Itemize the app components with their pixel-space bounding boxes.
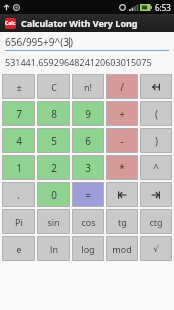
button[interactable]: ± — [2, 74, 35, 99]
button[interactable]: * — [106, 155, 138, 180]
button[interactable]: . — [2, 182, 35, 207]
staticText: mod — [112, 243, 132, 255]
button[interactable]: ) — [140, 128, 172, 153]
staticText: + — [119, 107, 125, 121]
button[interactable]: ctg — [140, 209, 172, 234]
staticText: = — [85, 188, 91, 202]
button[interactable]: 6 — [72, 128, 104, 153]
staticText: 0 — [51, 188, 57, 202]
button[interactable]: ln — [37, 236, 70, 261]
staticText: 5 — [51, 134, 57, 148]
button[interactable]: Pi — [2, 209, 35, 234]
button[interactable]: + — [106, 101, 138, 126]
staticText: tg — [118, 216, 127, 228]
staticText: ctg — [149, 216, 163, 228]
staticText: Pi — [15, 216, 23, 228]
button[interactable]: / — [106, 74, 138, 99]
staticText: n! — [84, 81, 92, 93]
button[interactable]: Move cursor to end — [140, 182, 172, 207]
button[interactable]: e — [2, 236, 35, 261]
staticText: Calculator With Very Long Numbers — [21, 17, 174, 29]
button[interactable]: 9 — [72, 101, 104, 126]
staticText: 3 — [85, 161, 91, 175]
staticText: 1 — [16, 161, 22, 175]
staticText: Calc — [5, 20, 16, 27]
staticText: ln — [50, 243, 58, 255]
staticText: 6 — [85, 134, 91, 148]
button[interactable]: sin — [37, 209, 70, 234]
staticText: 531441.6592964824120603015075 — [5, 56, 152, 68]
button[interactable]: 4 — [2, 128, 35, 153]
button[interactable]: ^ — [140, 155, 172, 180]
button[interactable]: 8 — [37, 101, 70, 126]
staticText: cos — [81, 216, 96, 228]
staticText: - — [120, 134, 124, 148]
staticText: ) — [155, 134, 158, 148]
button[interactable]: 0 — [37, 182, 70, 207]
button[interactable]: C — [37, 74, 70, 99]
staticText: √ — [153, 244, 159, 254]
button[interactable]: 2 — [37, 155, 70, 180]
staticText: 8 — [51, 107, 57, 121]
staticText: ± — [16, 81, 22, 93]
button[interactable]: √ — [140, 236, 172, 261]
staticText: 2 — [51, 161, 57, 175]
button[interactable]: Move cursor to start — [106, 182, 138, 207]
staticText: 9 — [85, 107, 91, 121]
button[interactable]: tg — [106, 209, 138, 234]
button[interactable]: ( — [140, 101, 172, 126]
staticText: ) — [70, 35, 73, 49]
staticText: log — [81, 243, 95, 255]
staticText: sin — [47, 216, 60, 228]
button[interactable]: 5 — [37, 128, 70, 153]
button[interactable]: 7 — [2, 101, 35, 126]
staticText: 6:53 — [155, 2, 171, 13]
button[interactable]: log — [72, 236, 104, 261]
button[interactable]: cos — [72, 209, 104, 234]
button[interactable]: n! — [72, 74, 104, 99]
button[interactable]: 3 — [72, 155, 104, 180]
staticText: ^ — [153, 161, 159, 175]
staticText: / — [120, 80, 124, 94]
staticText: e — [16, 243, 22, 255]
staticText: 7 — [16, 107, 22, 121]
staticText: . — [17, 188, 20, 202]
staticText: 656/995+9^(3 — [5, 35, 69, 49]
button[interactable]: - — [106, 128, 138, 153]
button[interactable]: 656/995+9^(3 — [5, 34, 169, 51]
staticText: * — [119, 161, 125, 175]
button[interactable]: mod — [106, 236, 138, 261]
button[interactable]: 1 — [2, 155, 35, 180]
button[interactable]: = — [72, 182, 104, 207]
staticText: C — [51, 81, 57, 93]
staticText: 4 — [16, 134, 22, 148]
button[interactable]: Backspace — [140, 74, 172, 99]
staticText: ( — [155, 107, 158, 121]
